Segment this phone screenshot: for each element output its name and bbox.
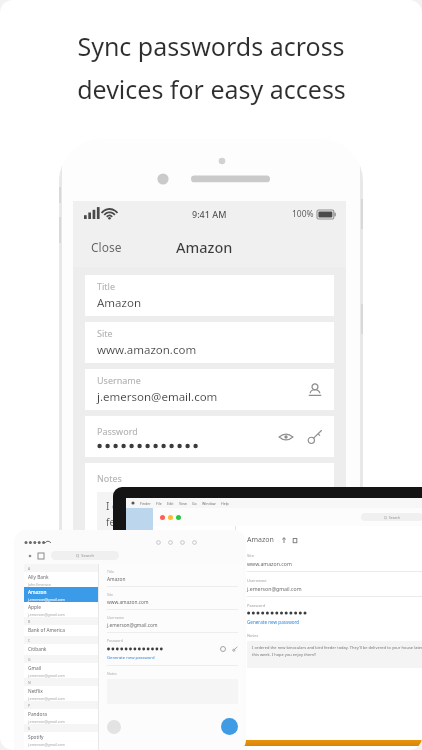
staticText: Notes — [247, 633, 259, 638]
staticText: Finder — [140, 501, 151, 506]
staticText: Amazon — [97, 295, 142, 311]
staticText: Notes — [97, 472, 122, 484]
button[interactable] — [153, 543, 235, 559]
button[interactable] — [153, 611, 235, 627]
button[interactable] — [153, 662, 235, 678]
staticText: Site — [247, 553, 254, 558]
staticText: P — [28, 703, 31, 708]
staticText: Gmail — [28, 665, 42, 672]
staticText: Notes — [107, 671, 117, 676]
button[interactable] — [153, 577, 235, 593]
staticText: j.emerson@gmail.com — [28, 597, 65, 602]
button[interactable]: Site — [85, 322, 334, 363]
button[interactable] — [153, 628, 235, 644]
staticText: Spotify — [28, 734, 44, 741]
staticText: 9:41 AM — [192, 208, 227, 220]
staticText: www.amazon.com — [247, 560, 292, 567]
button[interactable]: Amazon — [24, 587, 98, 602]
staticText: Username — [97, 374, 141, 386]
staticText: Password — [97, 425, 138, 437]
button[interactable] — [153, 594, 235, 610]
button[interactable]: Bank of America — [24, 625, 98, 636]
button[interactable]: Title — [85, 275, 334, 316]
staticText: C — [28, 638, 31, 643]
button[interactable]: Q Search — [361, 513, 422, 521]
staticText: Citibank — [28, 646, 47, 653]
button[interactable]: Notes — [85, 463, 334, 559]
button[interactable]: Choose contact — [307, 382, 323, 398]
staticText: Sync passwords across — [77, 29, 345, 63]
staticText: Username — [247, 578, 267, 583]
staticText: www.amazon.com — [97, 342, 197, 358]
staticText: Apple — [28, 604, 41, 611]
button[interactable]: Info — [107, 720, 121, 734]
staticText: j.emerson@gmail.com — [28, 742, 65, 747]
staticText: Q Search — [76, 553, 94, 558]
staticText: Help — [221, 501, 229, 506]
staticText: Amazon — [28, 589, 47, 596]
staticText: Edit — [167, 501, 174, 506]
button[interactable] — [153, 696, 235, 712]
staticText: devices for easy access — [77, 72, 346, 106]
staticText: Site — [107, 592, 114, 597]
staticText: File — [156, 501, 162, 506]
staticText: www.amazon.com — [107, 599, 149, 606]
button[interactable]: Share — [281, 537, 287, 543]
button[interactable]: Add item — [221, 718, 238, 735]
button[interactable]: Q Search — [51, 551, 119, 560]
staticText: Window — [202, 501, 216, 506]
staticText: j.emerson@gmail.com — [247, 585, 302, 592]
staticText: S — [28, 726, 30, 731]
staticText: Q Search — [384, 515, 401, 520]
staticText: Username — [107, 615, 125, 620]
button[interactable]: Delete — [292, 537, 298, 543]
button[interactable]: Spotify — [24, 732, 98, 747]
staticText: Go — [192, 501, 197, 506]
button[interactable] — [153, 645, 235, 661]
staticText: Amazon — [107, 576, 126, 583]
button[interactable]: Generate new password — [107, 655, 155, 661]
staticText: Pandora — [28, 711, 47, 718]
staticText: John Emerson — [28, 582, 51, 587]
button[interactable]: Apple — [24, 602, 98, 617]
staticText: Password — [107, 638, 123, 643]
staticText: Netflix — [28, 688, 43, 695]
staticText: Title — [107, 569, 114, 574]
button[interactable] — [153, 713, 235, 729]
button[interactable]: Ally Bank — [24, 572, 98, 587]
staticText: B — [28, 619, 31, 624]
staticText: I ordered the new binoculars and bird fe… — [106, 499, 316, 544]
staticText: j.emerson@gmail.com — [28, 673, 65, 678]
button[interactable]: Citibank — [24, 644, 98, 655]
staticText: j.emerson@email.com — [97, 389, 218, 405]
staticText: N — [28, 680, 31, 685]
staticText: Amazon — [176, 237, 233, 257]
staticText: A — [28, 566, 31, 571]
staticText: j.emerson@gmail.com — [107, 622, 158, 629]
staticText: Bank of America — [28, 627, 65, 634]
button[interactable]: Generate new password — [247, 619, 300, 625]
button[interactable]: Netflix — [24, 686, 98, 701]
button[interactable]: Show password — [278, 429, 294, 445]
button[interactable]: Close — [81, 232, 132, 262]
staticText: Close — [91, 239, 122, 255]
staticText: Password — [247, 603, 266, 608]
button[interactable]: Generate password — [307, 429, 323, 445]
staticText: Title — [97, 280, 115, 292]
button[interactable]: Pandora — [24, 709, 98, 724]
staticText: G — [28, 657, 31, 662]
staticText: j.emerson@gmail.com — [28, 719, 65, 724]
staticText: j.emerson@gmail.com — [28, 612, 65, 617]
staticText: View — [179, 501, 187, 506]
staticText: I ordered the new binoculars and bird fe… — [252, 645, 422, 658]
staticText: 100% — [292, 208, 314, 220]
button[interactable]: Password — [85, 416, 334, 457]
staticText: Amazon — [247, 535, 274, 545]
staticText: j.emerson@gmail.com — [28, 696, 65, 701]
staticText: Site — [97, 327, 113, 339]
button[interactable] — [153, 526, 235, 542]
button[interactable]: Gmail — [24, 663, 98, 678]
button[interactable]: Username — [85, 369, 334, 410]
